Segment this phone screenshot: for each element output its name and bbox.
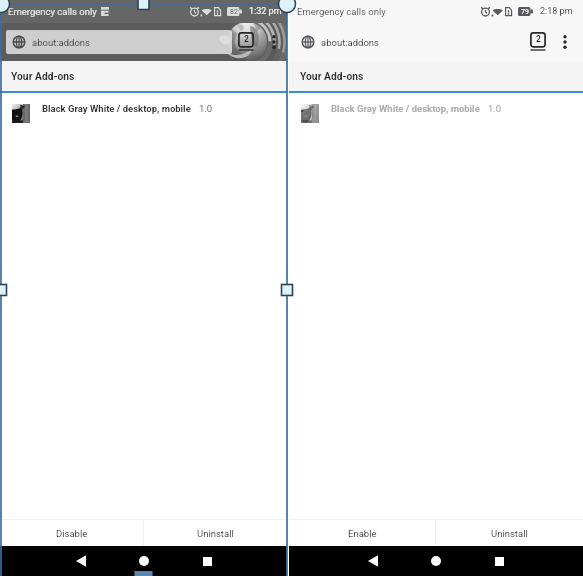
button[interactable]: Uninstall <box>436 520 583 546</box>
button[interactable]: about:addons <box>6 30 232 54</box>
staticText: Disable <box>56 528 88 539</box>
button[interactable]: Back <box>66 546 96 576</box>
staticText: Emergency calls only <box>297 6 386 17</box>
staticText: 2 <box>536 34 541 44</box>
staticText: Uninstall <box>197 528 234 539</box>
staticText: about:addons <box>32 37 91 48</box>
staticText: Black Gray White / desktop, mobile <box>331 103 480 114</box>
button[interactable]: More options <box>558 30 572 54</box>
staticText: Uninstall <box>491 528 528 539</box>
button[interactable]: Black Gray White / desktop, mobile <box>0 93 287 124</box>
staticText: Black Gray White / desktop, mobile <box>42 103 191 114</box>
staticText: 82 <box>230 8 238 16</box>
staticText: 1:32 pm <box>249 6 282 17</box>
button[interactable]: Home <box>129 546 159 576</box>
button[interactable]: Black Gray White / desktop, mobile <box>289 93 583 124</box>
staticText: 2 <box>244 34 249 44</box>
staticText: Your Add-ons <box>300 70 364 82</box>
staticText: Your Add-ons <box>11 70 75 82</box>
staticText: 79 <box>521 8 529 16</box>
staticText: 1.0 <box>488 103 502 114</box>
staticText: about:addons <box>321 37 380 48</box>
staticText: 2:18 pm <box>540 6 573 17</box>
staticText: Emergency calls only <box>8 6 97 17</box>
button[interactable]: Recent apps <box>192 546 222 576</box>
staticText: Enable <box>348 528 377 539</box>
staticText: 1.0 <box>199 103 213 114</box>
button[interactable]: Tabs <box>238 32 254 52</box>
button[interactable]: Enable <box>289 520 435 546</box>
button[interactable]: Tabs <box>530 32 546 52</box>
button[interactable]: Home <box>421 546 451 576</box>
button[interactable]: Back <box>358 546 388 576</box>
button[interactable]: Disable <box>0 520 143 546</box>
button[interactable]: Recent apps <box>484 546 514 576</box>
button[interactable]: More options <box>267 30 281 54</box>
button[interactable]: Uninstall <box>144 520 287 546</box>
